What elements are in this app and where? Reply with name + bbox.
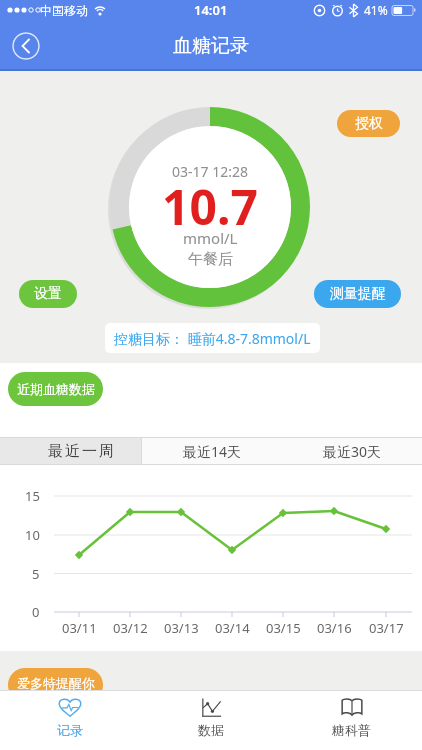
staticText: 糖科普 bbox=[332, 722, 371, 738]
staticText: 设置 bbox=[34, 285, 62, 303]
staticText: 控糖目标： 睡前4.8-7.8mmol/L bbox=[114, 329, 311, 348]
button[interactable]: 数据 bbox=[140, 690, 281, 750]
staticText: 测量提醒 bbox=[330, 285, 386, 303]
staticText: 记录 bbox=[57, 722, 83, 738]
button[interactable]: 测量提醒 bbox=[314, 280, 401, 308]
staticText: 15 bbox=[25, 487, 40, 505]
staticText: 03/12 bbox=[113, 619, 148, 637]
staticText: 血糖记录 bbox=[173, 34, 249, 58]
staticText: 中国移动 bbox=[40, 3, 88, 18]
button[interactable]: 最近30天 bbox=[282, 438, 422, 464]
staticText: 最近一周 bbox=[47, 442, 115, 461]
staticText: 爱多特提醒你 bbox=[17, 675, 95, 690]
staticText: 近期血糖数据 bbox=[17, 381, 95, 397]
button[interactable] bbox=[12, 32, 40, 60]
button[interactable]: 最近14天 bbox=[142, 438, 282, 464]
staticText: 03/17 bbox=[369, 619, 404, 637]
staticText: 03/13 bbox=[164, 619, 199, 637]
staticText: mmol/L bbox=[183, 228, 238, 246]
staticText: 03-17 12:28 bbox=[172, 162, 248, 181]
staticText: 0 bbox=[32, 603, 40, 621]
staticText: 授权 bbox=[355, 115, 383, 133]
button[interactable]: 设置 bbox=[19, 280, 77, 308]
staticText: 03/14 bbox=[215, 619, 250, 637]
button[interactable]: 控糖目标： 睡前4.8-7.8mmol/L bbox=[105, 323, 320, 353]
staticText: 03/15 bbox=[266, 619, 301, 637]
button[interactable]: 记录 bbox=[0, 690, 140, 750]
staticText: 数据 bbox=[198, 722, 224, 738]
staticText: 午餐后 bbox=[188, 250, 233, 268]
staticText: 03/16 bbox=[317, 619, 352, 637]
button[interactable]: 授权 bbox=[337, 110, 400, 137]
staticText: 最近30天 bbox=[323, 442, 382, 461]
button[interactable]: 最近一周 bbox=[0, 438, 141, 464]
button[interactable]: 糖科普 bbox=[281, 690, 422, 750]
staticText: 最近14天 bbox=[183, 442, 242, 461]
staticText: 03/11 bbox=[62, 619, 97, 637]
staticText: 14:01 bbox=[194, 1, 228, 19]
staticText: 10.7 bbox=[162, 174, 258, 230]
staticText: 41% bbox=[364, 2, 388, 18]
staticText: 5 bbox=[32, 565, 40, 583]
staticText: 10 bbox=[25, 526, 40, 544]
